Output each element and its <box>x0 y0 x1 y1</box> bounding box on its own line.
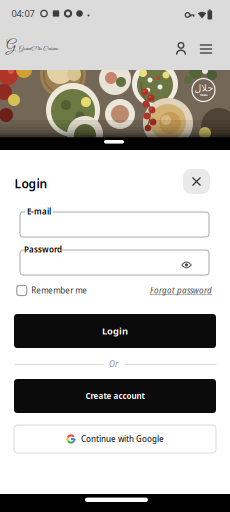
button[interactable]: Continue with Google <box>14 425 216 453</box>
staticText: HALAL <box>199 93 207 97</box>
staticText: Grand Pho Cuisine <box>19 45 58 52</box>
staticText: Continue with Google <box>81 434 164 444</box>
staticText: Forgot password <box>150 285 212 296</box>
button[interactable]: E-mail <box>20 212 209 237</box>
button[interactable]: Create account <box>14 379 216 413</box>
staticText: Remember me <box>31 285 87 296</box>
button[interactable]: Show password <box>181 261 192 269</box>
button[interactable]: Remember me <box>17 285 87 296</box>
staticText: Create account <box>85 391 144 401</box>
staticText: 04:07 <box>11 7 34 20</box>
staticText: Login <box>14 175 47 191</box>
button[interactable]: Close <box>183 169 210 194</box>
button[interactable]: Forgot password <box>150 285 212 296</box>
staticText: G <box>6 39 15 55</box>
staticText: Password <box>24 244 62 255</box>
button[interactable]: Password <box>20 250 209 275</box>
button[interactable]: Login <box>14 314 216 348</box>
button[interactable]: Menu <box>200 44 212 54</box>
button[interactable]: Profile <box>173 41 189 57</box>
staticText: Or <box>109 359 118 369</box>
staticText: حلال <box>194 83 213 93</box>
staticText: E-mail <box>27 206 51 217</box>
staticText: Login <box>102 325 128 337</box>
